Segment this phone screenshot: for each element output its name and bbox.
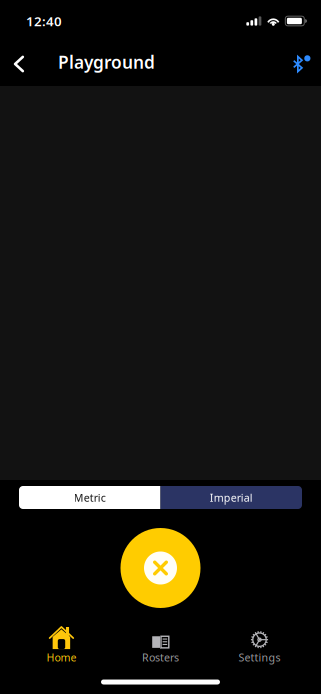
staticText: 12:40 xyxy=(26,12,62,30)
staticText: Imperial xyxy=(210,490,253,505)
staticText: Rosters xyxy=(142,650,179,664)
button[interactable]: Imperial xyxy=(160,486,302,509)
button[interactable]: Settings xyxy=(210,624,309,670)
button[interactable]: Home xyxy=(12,624,111,670)
button[interactable]: Bluetooth xyxy=(287,42,317,86)
staticText: Settings xyxy=(238,650,280,664)
staticText: Metric xyxy=(74,490,106,505)
button[interactable]: Back xyxy=(2,42,36,86)
staticText: Home xyxy=(46,650,76,664)
staticText: Playground xyxy=(58,50,155,73)
button[interactable]: Rosters xyxy=(111,624,210,670)
button[interactable]: Stop xyxy=(120,528,200,608)
button[interactable]: Metric xyxy=(19,486,160,509)
